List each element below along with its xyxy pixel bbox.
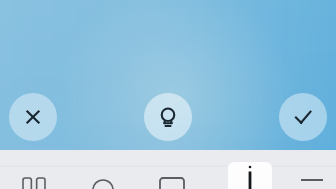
button[interactable]: Cards bbox=[3, 166, 65, 189]
button[interactable]: Screen bbox=[141, 166, 203, 189]
button[interactable]: Hint bbox=[144, 93, 192, 141]
button[interactable]: Confirm bbox=[279, 93, 327, 141]
button[interactable]: Shapes bbox=[72, 166, 134, 189]
button[interactable]: More bbox=[288, 166, 336, 189]
button[interactable]: Close bbox=[9, 93, 57, 141]
button[interactable]: Info bbox=[219, 162, 281, 189]
